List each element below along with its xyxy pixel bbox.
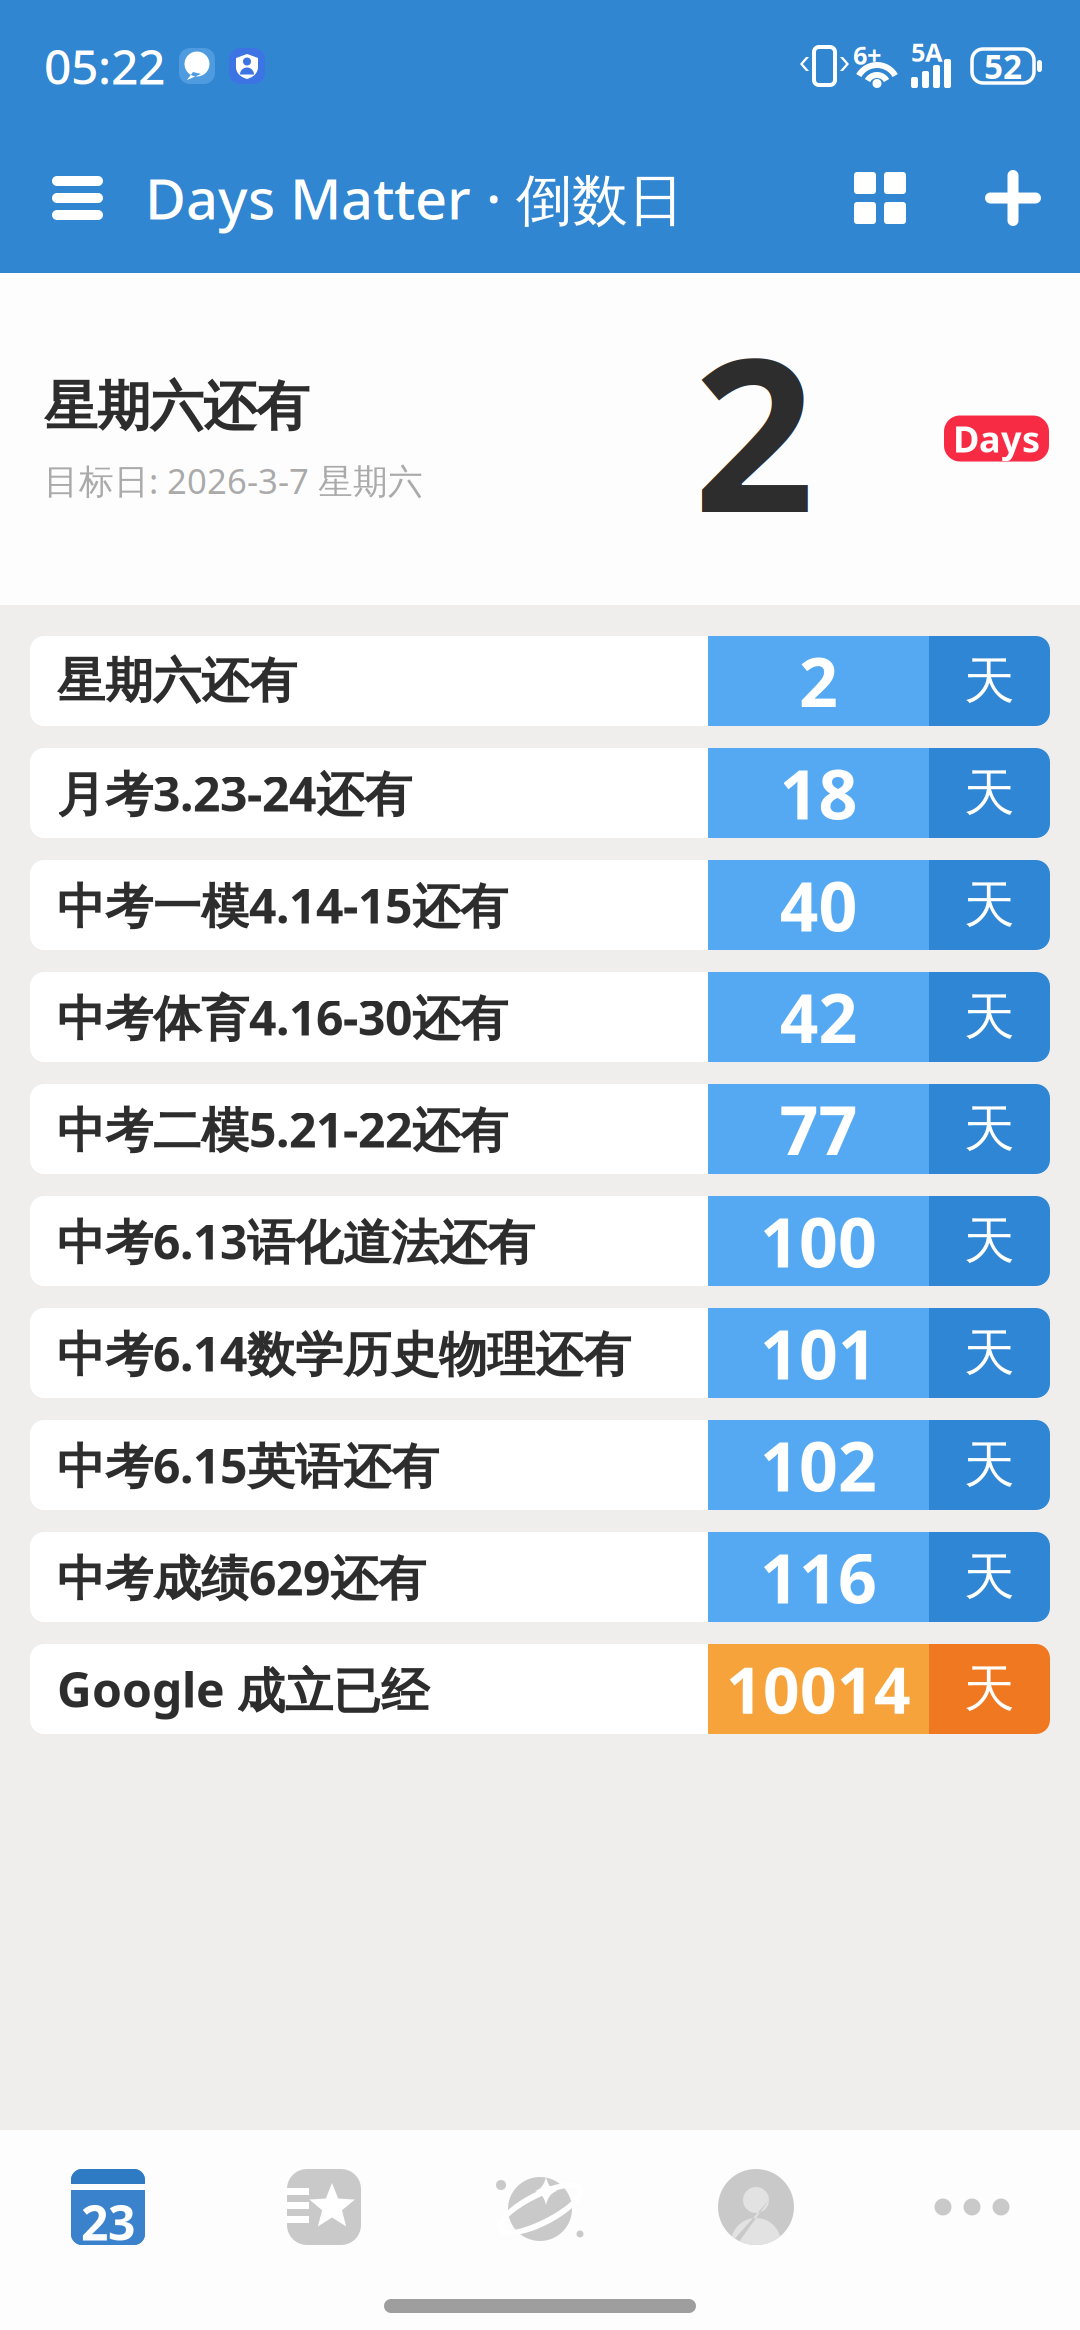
- button[interactable]: 月考3.23-24还有: [30, 748, 1050, 838]
- button[interactable]: 中考体育4.16-30还有: [30, 972, 1050, 1062]
- staticText: 2: [693, 289, 814, 570]
- staticText: 42: [779, 972, 857, 1062]
- staticText: 星期六还有: [57, 651, 297, 710]
- button[interactable]: Discover: [432, 2156, 648, 2258]
- button[interactable]: 中考6.13语化道法还有: [30, 1196, 1050, 1286]
- button[interactable]: Grid view: [854, 132, 906, 264]
- staticText: 52: [984, 44, 1022, 88]
- button[interactable]: Add event: [985, 132, 1041, 264]
- staticText: 星期六还有: [44, 374, 309, 439]
- staticText: 100: [760, 1196, 877, 1286]
- staticText: 中考成绩629还有: [57, 1545, 426, 1609]
- staticText: 6+: [853, 38, 881, 72]
- button[interactable]: 中考二模5.21-22还有: [30, 1084, 1050, 1174]
- staticText: 40: [779, 860, 857, 950]
- staticText: 18: [779, 748, 857, 838]
- staticText: 天: [964, 1546, 1015, 1608]
- staticText: 天: [964, 1210, 1015, 1272]
- staticText: 天: [964, 1658, 1015, 1720]
- staticText: 天: [964, 762, 1015, 824]
- staticText: 天: [964, 1434, 1015, 1496]
- staticText: 月考3.23-24还有: [57, 761, 412, 825]
- staticText: 中考二模5.21-22还有: [57, 1097, 508, 1161]
- staticText: 77: [779, 1084, 857, 1174]
- button[interactable]: Menu: [0, 132, 103, 264]
- staticText: 目标日: 2026-3-7 星期六: [44, 457, 423, 503]
- staticText: 天: [964, 986, 1015, 1048]
- button[interactable]: Google 成立已经: [30, 1644, 1050, 1734]
- staticText: 2: [799, 636, 838, 726]
- button[interactable]: 中考6.15英语还有: [30, 1420, 1050, 1510]
- staticText: Google 成立已经: [57, 1657, 429, 1721]
- staticText: 10014: [726, 1646, 911, 1731]
- button[interactable]: Collections: [216, 2156, 432, 2258]
- staticText: 102: [760, 1420, 877, 1510]
- staticText: 101: [760, 1308, 877, 1398]
- staticText: 中考6.13语化道法还有: [57, 1209, 535, 1273]
- staticText: 中考6.15英语还有: [57, 1433, 439, 1497]
- button[interactable]: 星期六还有: [30, 636, 1050, 726]
- button[interactable]: 中考6.14数学历史物理还有: [30, 1308, 1050, 1398]
- staticText: 中考一模4.14-15还有: [57, 873, 508, 937]
- button[interactable]: 中考成绩629还有: [30, 1532, 1050, 1622]
- staticText: 天: [964, 874, 1015, 936]
- button[interactable]: Countdowns: [0, 2156, 216, 2258]
- staticText: 05:22: [44, 34, 165, 98]
- staticText: Days Matter · 倒数日: [145, 161, 684, 235]
- staticText: 天: [964, 1322, 1015, 1384]
- staticText: 5A: [911, 35, 943, 69]
- staticText: 116: [760, 1532, 877, 1622]
- staticText: 中考6.14数学历史物理还有: [57, 1321, 631, 1385]
- button[interactable]: Profile: [648, 2156, 864, 2258]
- staticText: 中考体育4.16-30还有: [57, 985, 508, 1049]
- staticText: 23: [81, 2190, 135, 2254]
- staticText: 天: [964, 1098, 1015, 1160]
- button[interactable]: 中考一模4.14-15还有: [30, 860, 1050, 950]
- staticText: 天: [964, 650, 1015, 712]
- button[interactable]: More: [864, 2156, 1080, 2258]
- staticText: Days: [953, 415, 1040, 462]
